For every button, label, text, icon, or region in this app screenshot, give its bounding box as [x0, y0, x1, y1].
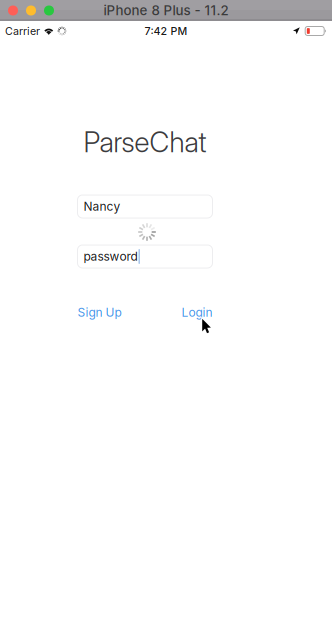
- staticText: Sign Up: [77, 305, 121, 319]
- staticText: Nancy: [83, 199, 120, 214]
- button[interactable]: Login: [181, 305, 212, 319]
- staticText: Login: [181, 305, 212, 319]
- staticText: Carrier: [5, 24, 40, 37]
- staticText: iPhone 8 Plus - 11.2: [103, 2, 228, 18]
- staticText: ParseChat: [83, 125, 206, 159]
- button[interactable]: Sign Up: [77, 305, 121, 319]
- staticText: 7:42 PM: [144, 24, 187, 37]
- staticText: password: [83, 249, 137, 264]
